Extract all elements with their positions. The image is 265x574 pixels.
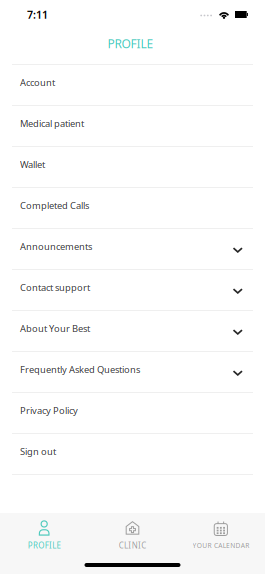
- staticText: Contact support: [20, 281, 90, 294]
- button[interactable]: YOUR CALENDAR: [177, 519, 265, 550]
- button[interactable]: Sign out: [0, 434, 265, 475]
- staticText: Announcements: [20, 240, 92, 253]
- staticText: Sign out: [20, 445, 56, 458]
- button[interactable]: Announcements: [0, 229, 265, 270]
- button[interactable]: About Your Best: [0, 311, 265, 352]
- staticText: PROFILE: [107, 35, 153, 51]
- staticText: About Your Best: [20, 322, 90, 335]
- staticText: Account: [20, 76, 55, 89]
- button[interactable]: Medical patient: [0, 106, 265, 147]
- button[interactable]: Wallet: [0, 147, 265, 188]
- staticText: 7:11: [27, 7, 48, 22]
- staticText: Completed Calls: [20, 199, 89, 212]
- button[interactable]: Frequently Asked Questions: [0, 352, 265, 393]
- staticText: Privacy Policy: [20, 404, 78, 417]
- staticText: CLINIC: [119, 540, 146, 551]
- button[interactable]: CLINIC: [88, 518, 177, 551]
- button[interactable]: Contact support: [0, 270, 265, 311]
- staticText: PROFILE: [28, 540, 61, 551]
- staticText: Medical patient: [20, 117, 84, 130]
- button[interactable]: PROFILE: [0, 518, 88, 551]
- staticText: Wallet: [20, 158, 45, 171]
- staticText: YOUR CALENDAR: [192, 541, 249, 550]
- button[interactable]: Privacy Policy: [0, 393, 265, 434]
- button[interactable]: Account: [0, 65, 265, 106]
- button[interactable]: Completed Calls: [0, 188, 265, 229]
- staticText: Frequently Asked Questions: [20, 363, 140, 376]
